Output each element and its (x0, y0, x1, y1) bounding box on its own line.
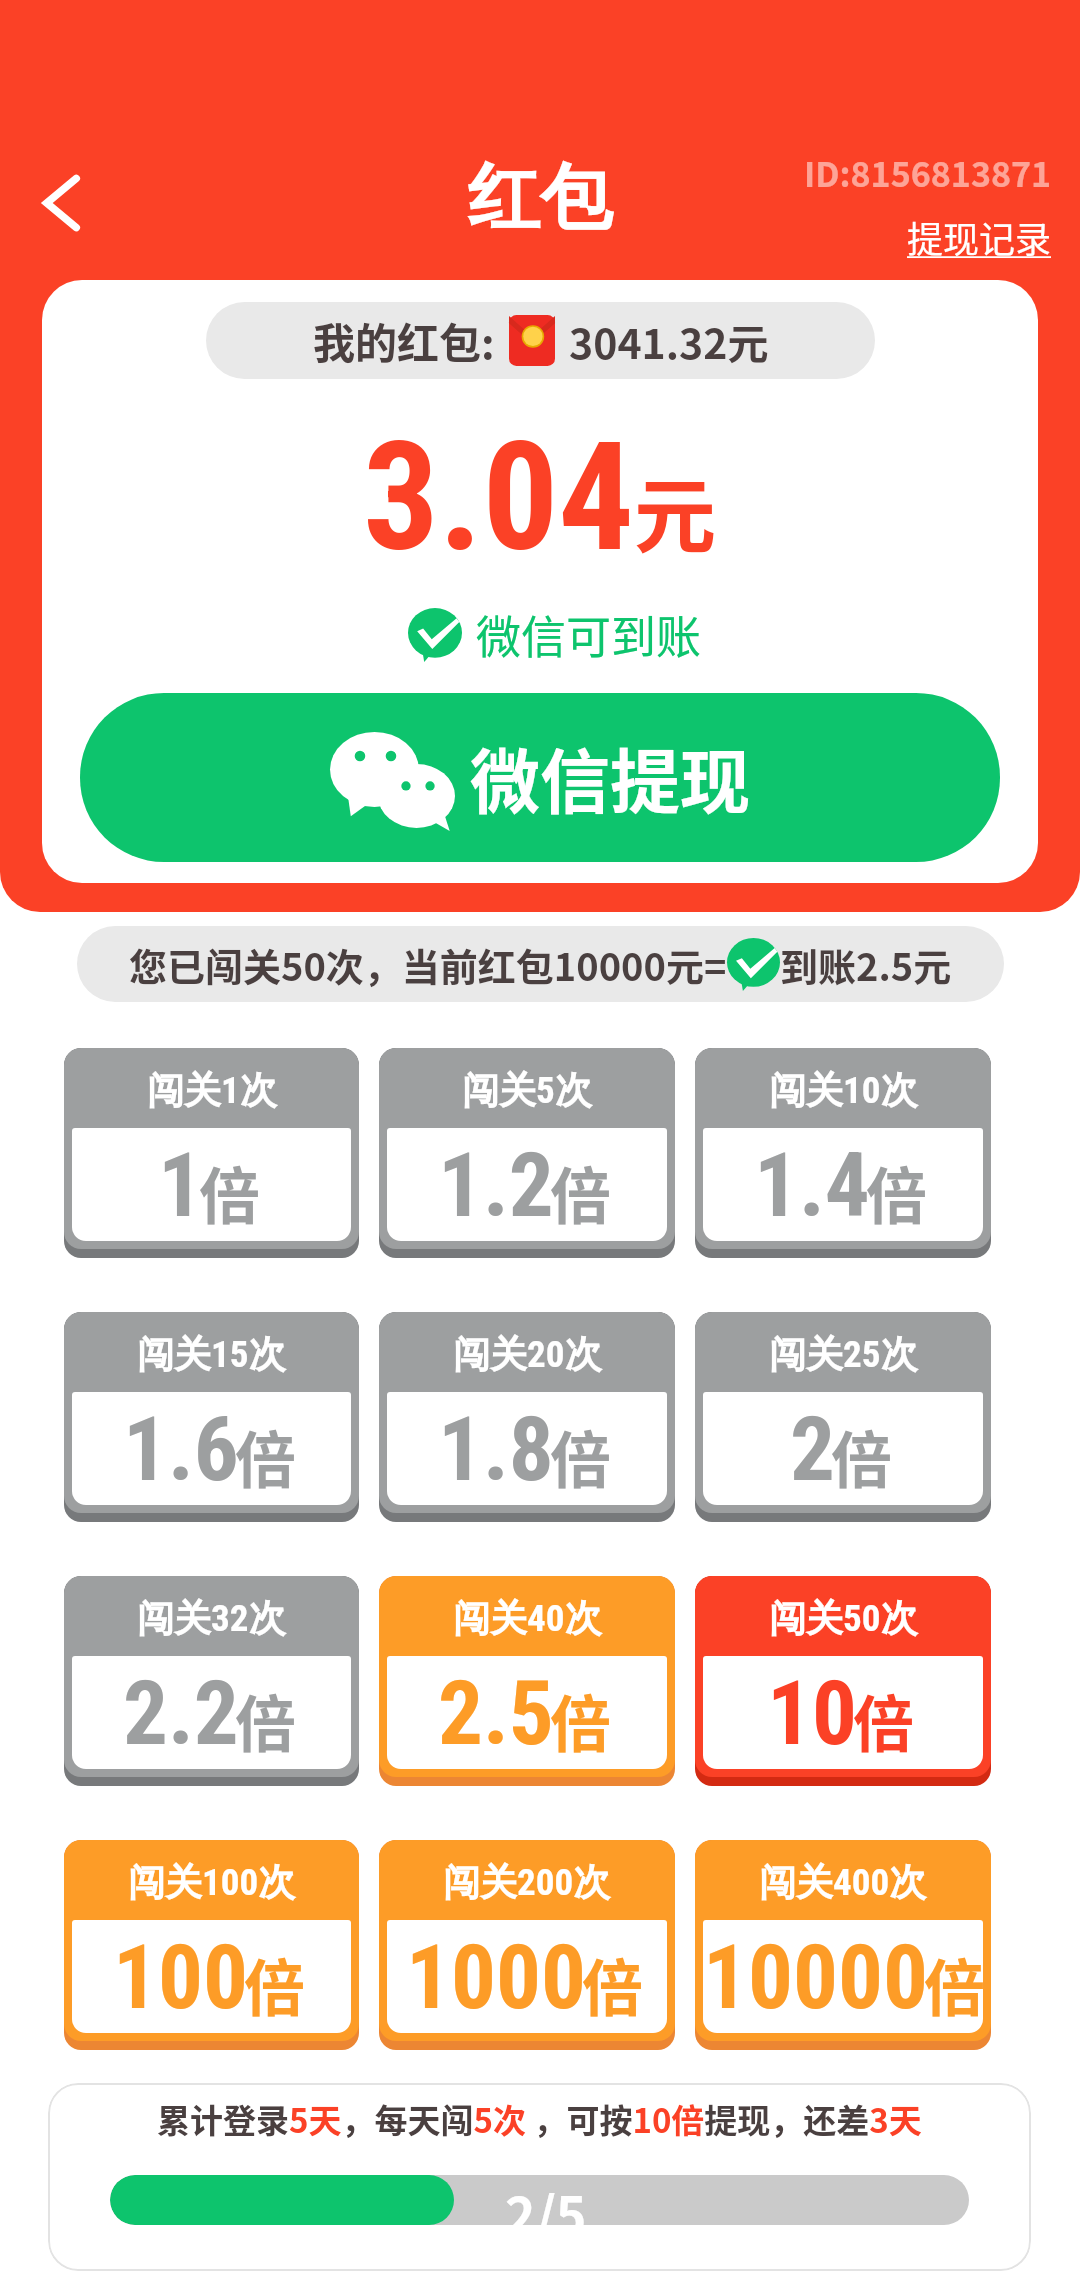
staticText: 2.2 (123, 1661, 239, 1765)
staticText: 倍 (924, 1940, 979, 2028)
staticText: 闯关15次 (137, 1331, 286, 1378)
button[interactable]: 闯关40次 (379, 1576, 675, 1786)
button[interactable]: 闯关20次 (379, 1312, 675, 1522)
staticText: 1 (158, 1133, 203, 1237)
staticText: 倍 (582, 1940, 644, 2028)
staticText: 闯关100次 (128, 1859, 296, 1906)
staticText: 倍 (853, 1676, 915, 1764)
staticText: 倍 (831, 1412, 893, 1500)
staticText: 我的红包: (313, 310, 495, 371)
staticText: 10 (767, 1661, 857, 1765)
staticText: 闯关400次 (759, 1859, 927, 1906)
staticText: 2/5 (505, 2175, 587, 2225)
staticText: 倍 (244, 1940, 306, 2028)
staticText: 闯关32次 (137, 1595, 286, 1642)
staticText: 微信提现 (470, 727, 750, 828)
staticText: ID:8156813871 (804, 148, 1052, 197)
staticText: 闯关25次 (769, 1331, 918, 1378)
button[interactable]: 闯关50次 (695, 1576, 991, 1786)
staticText: 倍 (866, 1148, 928, 1236)
staticText: 3041.32元 (569, 311, 769, 370)
staticText: 闯关5次 (462, 1067, 592, 1114)
staticText: 3.04 (363, 410, 634, 586)
staticText: 倍 (235, 1676, 297, 1764)
staticText: 您已闯关50次，当前红包10000元= (129, 937, 727, 992)
staticText: 闯关10次 (769, 1067, 918, 1114)
staticText: 1.6 (123, 1397, 239, 1501)
button[interactable]: 闯关100次 (64, 1840, 359, 2050)
button[interactable]: 提现记录 (907, 211, 1052, 263)
staticText: 闯关1次 (147, 1067, 277, 1114)
staticText: 倍 (199, 1148, 261, 1236)
button[interactable]: 闯关32次 (64, 1576, 359, 1786)
staticText: 倍 (235, 1412, 297, 1500)
button[interactable]: 闯关400次 (695, 1840, 991, 2050)
button[interactable]: 闯关25次 (695, 1312, 991, 1522)
button[interactable]: Back (13, 155, 109, 251)
button[interactable]: 闯关10次 (695, 1048, 991, 1258)
button[interactable]: 微信提现 (80, 693, 1000, 862)
button[interactable]: 闯关15次 (64, 1312, 359, 1522)
staticText: 倍 (550, 1676, 612, 1764)
staticText: 元 (634, 451, 717, 570)
button[interactable]: 闯关200次 (379, 1840, 675, 2050)
button[interactable]: 闯关5次 (379, 1048, 675, 1258)
staticText: 1.8 (438, 1397, 554, 1501)
staticText: 1.2 (438, 1133, 554, 1237)
staticText: 2.5 (438, 1661, 554, 1765)
staticText: 10000 (703, 1925, 928, 2029)
staticText: 闯关40次 (453, 1595, 602, 1642)
staticText: 倍 (550, 1412, 612, 1500)
staticText: 闯关200次 (443, 1859, 611, 1906)
staticText: 2 (790, 1397, 835, 1501)
staticText: 累计登录5天，每天闯5次 ，可按10倍提现，还差3天 (157, 2095, 922, 2143)
staticText: 到账2.5元 (780, 937, 952, 992)
staticText: 闯关20次 (453, 1331, 602, 1378)
staticText: 闯关50次 (769, 1595, 918, 1642)
staticText: 红包 (468, 153, 612, 244)
staticText: 微信可到账 (476, 602, 702, 667)
staticText: 1000 (406, 1925, 586, 2029)
staticText: 1.4 (754, 1133, 870, 1237)
staticText: 倍 (550, 1148, 612, 1236)
staticText: 100 (113, 1925, 248, 2029)
button[interactable]: 闯关1次 (64, 1048, 359, 1258)
